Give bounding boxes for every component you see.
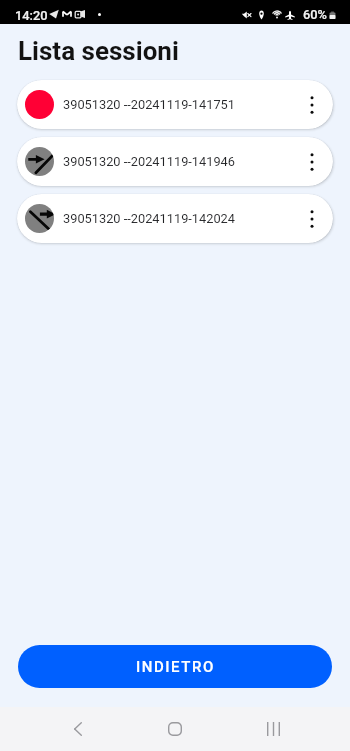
staticText: 39051320 --20241119-141946 — [63, 154, 236, 169]
button[interactable]: 39051320 --20241119-142024 — [17, 194, 333, 243]
staticText: 39051320 --20241119-141751 — [63, 97, 236, 112]
staticText: Lista sessioni — [18, 36, 179, 66]
button[interactable]: Back — [54, 707, 102, 751]
button[interactable]: More options — [297, 204, 327, 234]
button[interactable]: More options — [297, 147, 327, 177]
staticText: 14:20 — [15, 8, 48, 23]
button[interactable]: INDIETRO — [18, 645, 332, 688]
staticText: 39051320 --20241119-142024 — [63, 211, 236, 226]
button[interactable]: 39051320 --20241119-141946 — [17, 137, 333, 186]
button[interactable]: 39051320 --20241119-141751 — [17, 80, 333, 129]
staticText: 60% — [303, 7, 327, 22]
button[interactable]: More options — [297, 90, 327, 120]
button[interactable]: Recents — [249, 707, 297, 751]
button[interactable]: Home — [151, 707, 199, 751]
staticText: INDIETRO — [136, 658, 215, 676]
